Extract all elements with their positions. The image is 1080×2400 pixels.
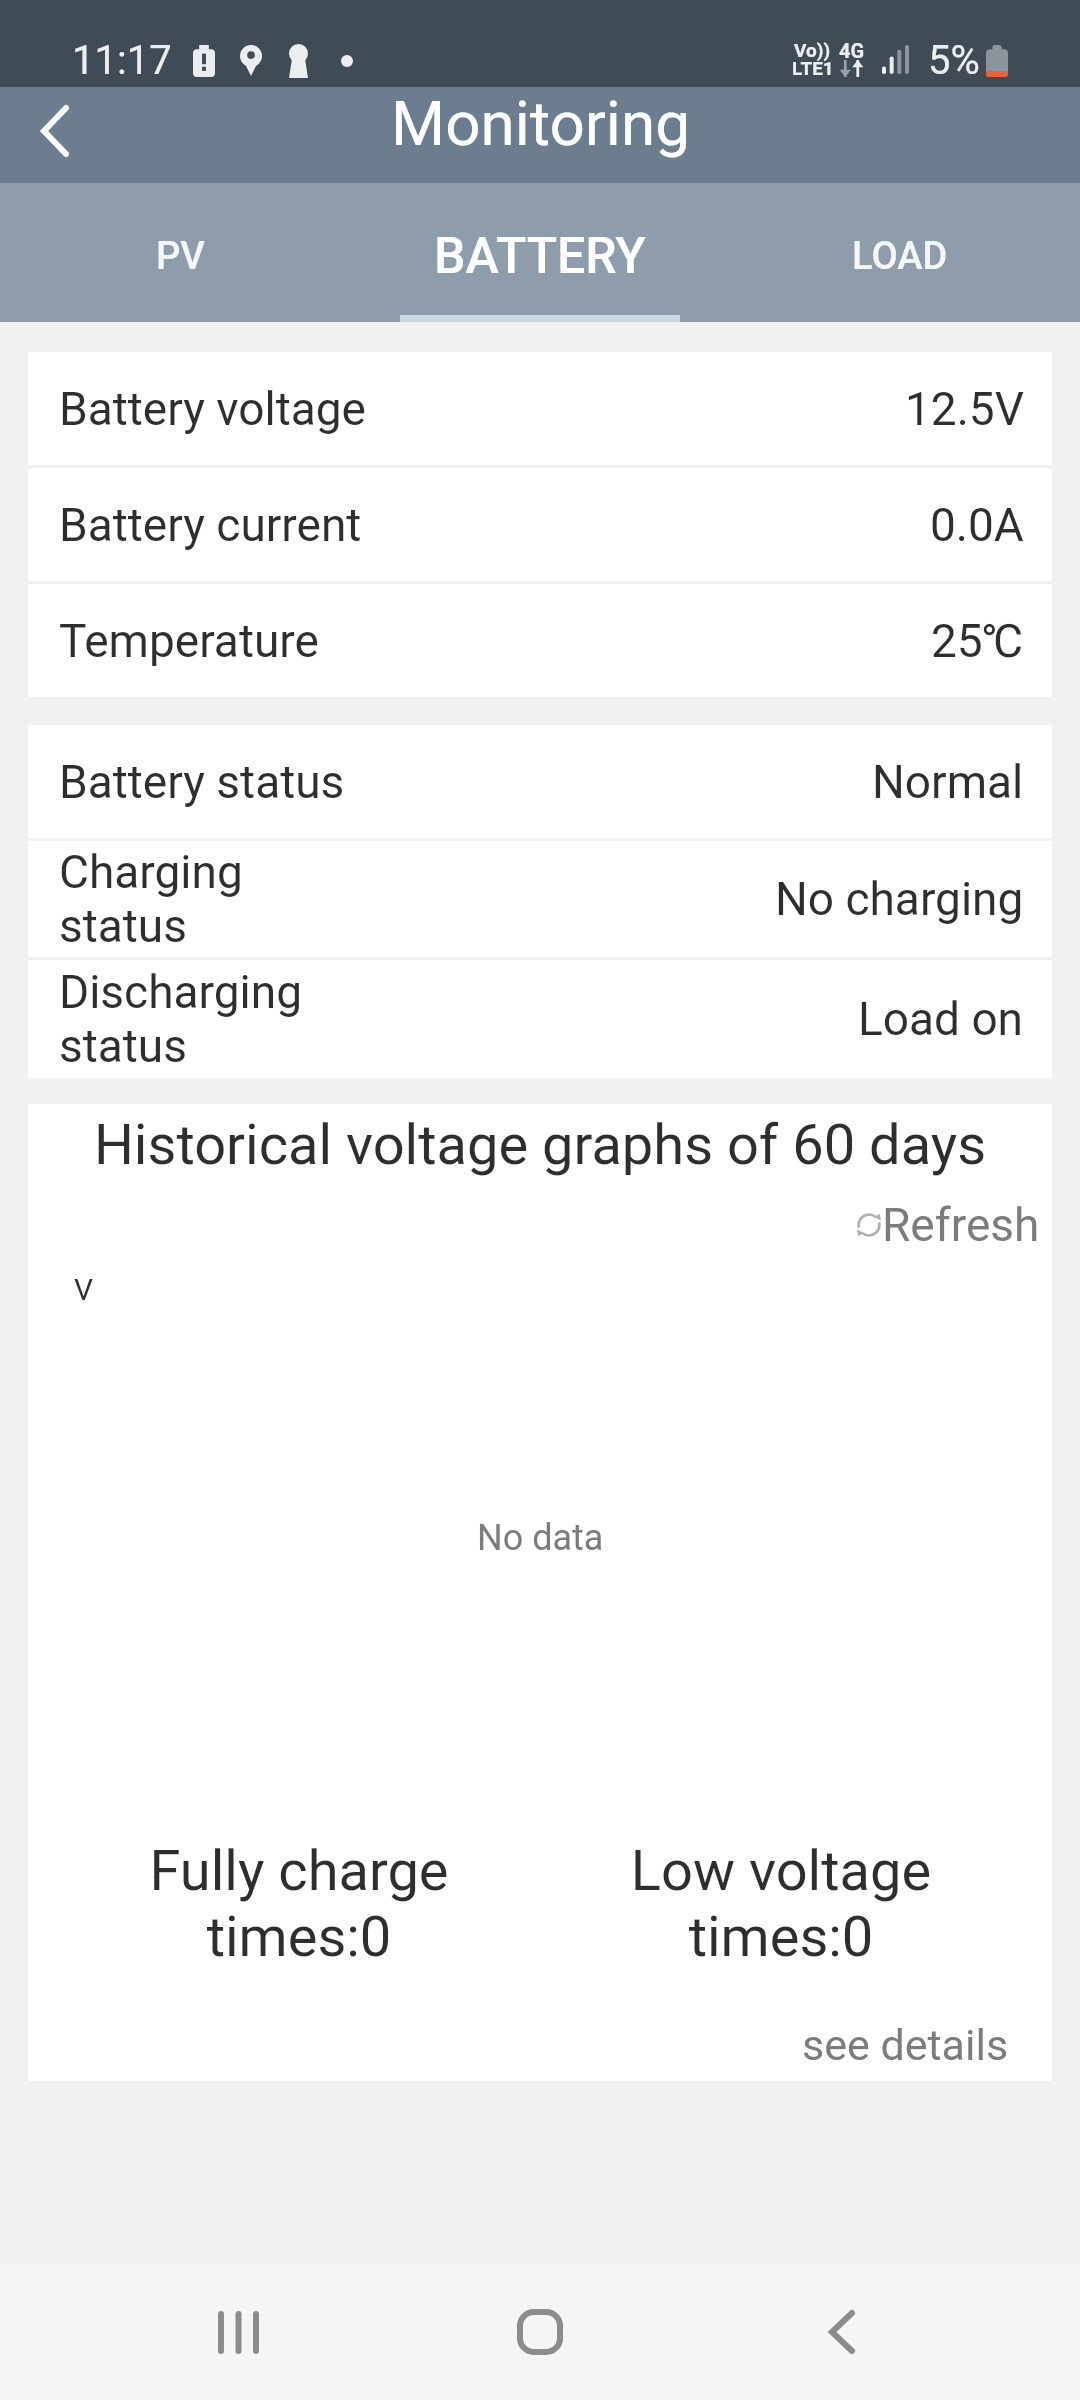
staticText: PV: [156, 234, 205, 279]
staticText: Fully charge times:0: [58, 1838, 540, 1970]
button[interactable]: Recent apps: [163, 2264, 313, 2400]
staticText: Vo)): [794, 39, 831, 61]
staticText: LOAD: [852, 234, 948, 279]
staticText: No charging: [775, 872, 1024, 926]
button[interactable]: Discharging status: [28, 960, 1052, 1078]
button[interactable]: Home: [465, 2264, 615, 2400]
button[interactable]: PV: [0, 183, 360, 322]
staticText: see details: [802, 2020, 1009, 2070]
staticText: 0.0A: [930, 498, 1024, 552]
staticText: LTE1: [792, 57, 834, 79]
staticText: Discharging status: [59, 965, 302, 1073]
button[interactable]: LOAD: [720, 183, 1080, 322]
staticText: Normal: [872, 755, 1024, 809]
button[interactable]: BATTERY: [360, 183, 720, 322]
button[interactable]: Refresh: [856, 1198, 1040, 1252]
button[interactable]: Back: [767, 2264, 917, 2400]
staticText: Refresh: [882, 1198, 1040, 1252]
staticText: 4G: [839, 39, 865, 62]
staticText: Battery status: [59, 755, 345, 809]
button[interactable]: Charging status: [28, 841, 1052, 957]
staticText: Monitoring: [391, 87, 690, 160]
staticText: Temperature: [59, 614, 319, 668]
staticText: Battery voltage: [59, 382, 366, 436]
button[interactable]: Back: [0, 87, 110, 183]
button[interactable]: Temperature: [28, 584, 1052, 697]
button[interactable]: Battery voltage: [28, 352, 1052, 465]
staticText: 12.5V: [905, 382, 1024, 436]
staticText: BATTERY: [434, 227, 646, 286]
staticText: Low voltage times:0: [540, 1838, 1022, 1970]
staticText: Historical voltage graphs of 60 days: [28, 1112, 1052, 1178]
button[interactable]: Battery status: [28, 725, 1052, 838]
staticText: Charging status: [59, 845, 243, 953]
staticText: 25℃: [931, 614, 1024, 668]
staticText: Load on: [858, 992, 1024, 1046]
staticText: V: [74, 1272, 94, 1307]
button[interactable]: Battery current: [28, 468, 1052, 581]
staticText: 11:17: [72, 37, 172, 84]
staticText: 5%: [928, 37, 980, 84]
button[interactable]: see details: [802, 2020, 1009, 2070]
staticText: Battery current: [59, 498, 362, 552]
staticText: No data: [477, 1517, 604, 1559]
